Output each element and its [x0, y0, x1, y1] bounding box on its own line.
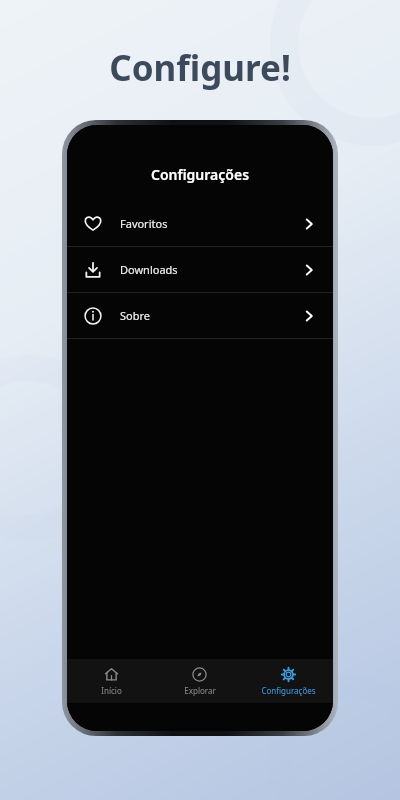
staticText: Favoritos: [120, 216, 168, 231]
staticText: Início: [101, 685, 122, 696]
staticText: Sobre: [120, 308, 150, 323]
button[interactable]: Sobre: [67, 293, 333, 338]
staticText: Configurações: [67, 165, 333, 184]
staticText: Explorar: [184, 685, 216, 696]
button[interactable]: Configurações: [244, 663, 333, 700]
button[interactable]: Explorar: [155, 663, 244, 700]
staticText: Configurações: [261, 685, 316, 696]
staticText: Configure!: [0, 44, 400, 92]
button[interactable]: Downloads: [67, 247, 333, 292]
button[interactable]: Favoritos: [67, 201, 333, 246]
button[interactable]: Início: [67, 663, 155, 700]
staticText: Downloads: [120, 262, 178, 277]
